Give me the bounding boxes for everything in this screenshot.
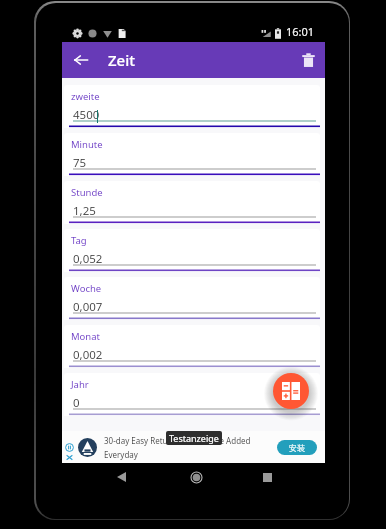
staticText: 0,007 <box>73 299 103 315</box>
staticText: Jahr <box>71 378 89 391</box>
staticText: 0,002 <box>73 347 103 363</box>
button[interactable]: Calculate <box>273 373 309 409</box>
staticText: 30-day Easy Returns, Worldwide Added <box>104 435 251 446</box>
button[interactable]: Woche <box>64 277 320 320</box>
staticText: 0 <box>73 395 80 411</box>
staticText: Woche <box>71 282 102 295</box>
button[interactable]: Home <box>186 467 206 487</box>
staticText: Testanzeige <box>169 432 219 444</box>
staticText: zweite <box>71 90 100 103</box>
staticText: Tag <box>71 234 87 247</box>
button[interactable]: Back <box>111 467 131 487</box>
button[interactable]: Recents <box>257 467 277 487</box>
staticText: 1,25 <box>73 203 96 219</box>
staticText: Minute <box>71 138 103 151</box>
staticText: 安装 <box>289 443 305 453</box>
button[interactable]: Stunde <box>64 181 320 224</box>
staticText: Monat <box>71 330 100 343</box>
staticText: 16:01 <box>286 24 315 39</box>
staticText: Zeit <box>108 50 136 70</box>
button[interactable]: Jahr <box>64 373 320 416</box>
button[interactable]: Monat <box>64 325 320 368</box>
button[interactable]: Minute <box>64 133 320 176</box>
button[interactable]: Tag <box>64 229 320 272</box>
button[interactable]: Delete <box>295 47 321 73</box>
staticText: 75 <box>73 155 87 171</box>
staticText: Stunde <box>71 186 103 199</box>
staticText: Everyday <box>104 449 138 460</box>
button[interactable]: Back <box>68 47 94 73</box>
staticText: 4500 <box>73 107 100 123</box>
button[interactable]: 安装 <box>277 440 317 455</box>
staticText: 0,052 <box>73 251 103 267</box>
button[interactable]: zweite <box>64 85 320 128</box>
